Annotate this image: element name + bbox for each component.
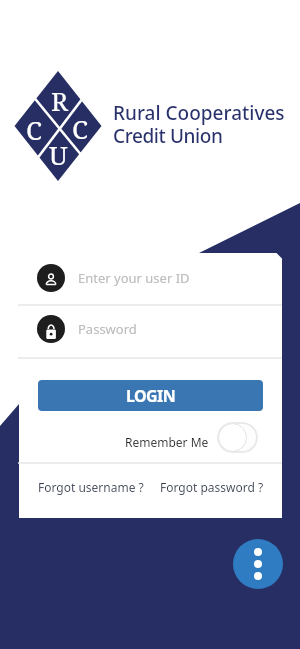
staticText: Rural Cooperatives (113, 100, 285, 126)
button[interactable] (233, 539, 283, 589)
staticText: Credit Union (113, 123, 223, 149)
staticText: C (26, 112, 42, 147)
button[interactable]: Remember Me (125, 422, 258, 453)
staticText: LOGIN (126, 385, 176, 407)
staticText: Remember Me (125, 434, 209, 450)
button[interactable]: Forgot username ? (38, 479, 144, 495)
staticText: C (72, 111, 88, 146)
staticText: R (51, 83, 69, 118)
staticText: Enter your user ID (78, 269, 190, 287)
button[interactable]: Forgot password ? (160, 479, 264, 495)
button[interactable]: LOGIN (38, 380, 263, 411)
button[interactable]: Password (0, 305, 282, 353)
staticText: Password (78, 320, 137, 338)
staticText: U (49, 137, 68, 172)
button[interactable]: Enter your user ID (0, 254, 282, 301)
